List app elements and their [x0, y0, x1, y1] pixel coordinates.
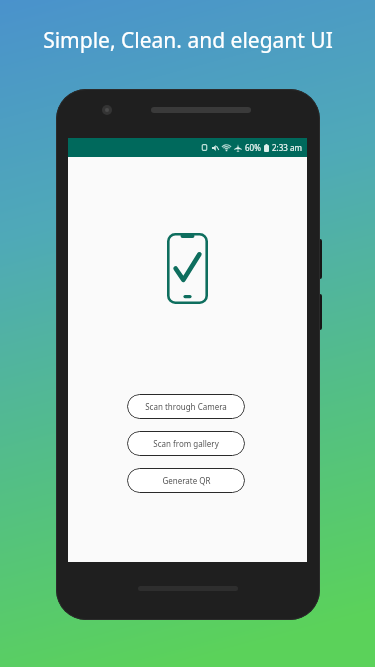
staticText: Generate QR — [162, 475, 211, 486]
staticText: Scan through Camera — [145, 401, 227, 412]
button[interactable]: Scan through Camera — [127, 394, 245, 419]
staticText: Scan from gallery — [153, 438, 219, 449]
staticText: 60% — [245, 142, 261, 153]
button[interactable]: Generate QR — [127, 468, 245, 493]
button[interactable]: Scan from gallery — [127, 431, 245, 456]
staticText: 2:33 am — [272, 142, 302, 153]
staticText: Simple, Clean. and elegant UI — [43, 26, 333, 55]
